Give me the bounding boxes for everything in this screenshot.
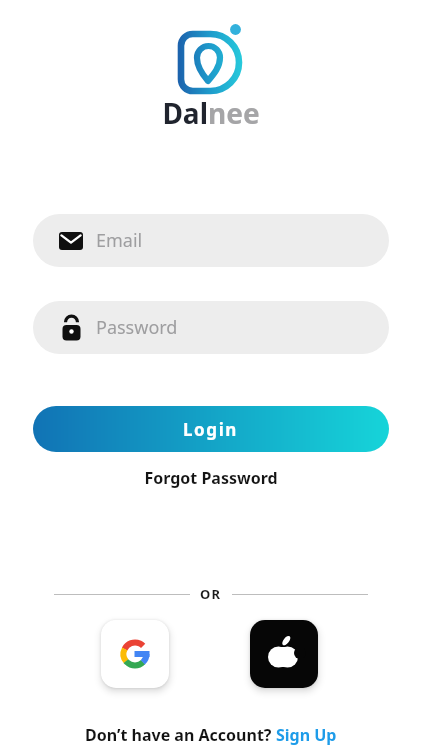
button[interactable]: Don’t have an Account?: [0, 724, 422, 746]
staticText: OR: [200, 585, 222, 603]
button[interactable]: [250, 620, 318, 688]
staticText: Sign Up: [276, 724, 337, 746]
button[interactable]: Forgot Password: [0, 467, 422, 489]
button[interactable]: Email: [33, 214, 389, 267]
staticText: Password: [96, 315, 178, 340]
staticText: Don’t have an Account?: [85, 724, 276, 746]
staticText: Dalnee: [0, 94, 422, 132]
button[interactable]: Password: [33, 301, 389, 354]
staticText: Email: [96, 228, 143, 253]
button[interactable]: Login: [33, 406, 389, 452]
button[interactable]: [101, 620, 169, 688]
staticText: Login: [183, 418, 239, 441]
